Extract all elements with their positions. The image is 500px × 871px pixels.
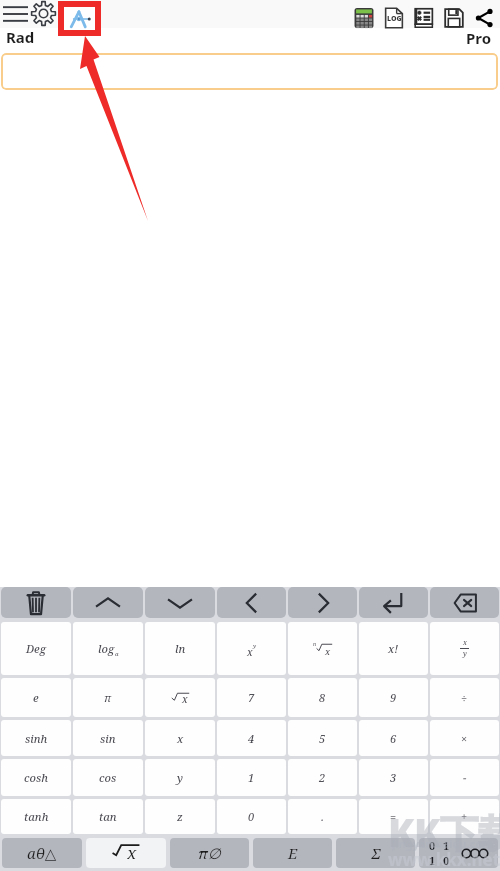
staticText: www.kkx.net (388, 848, 500, 871)
staticText: n (313, 641, 317, 648)
button[interactable]: Backspace (430, 587, 499, 618)
staticText: aθ△ (27, 843, 57, 863)
staticText: x (182, 692, 188, 706)
staticText: 0 (429, 838, 436, 853)
staticText: x (247, 645, 253, 659)
button[interactable]: Pro (466, 28, 492, 48)
button[interactable]: Settings (29, 0, 57, 27)
button[interactable]: x^y (217, 622, 286, 675)
button[interactable]: Calculator (349, 3, 379, 33)
staticText: 1 (248, 770, 255, 785)
button[interactable]: Matrix (419, 838, 498, 868)
button[interactable]: Down (145, 587, 215, 618)
button[interactable]: Left (217, 587, 286, 618)
button[interactable] (1, 53, 498, 90)
staticText: 1 (443, 838, 450, 853)
staticText: y (177, 770, 183, 785)
staticText: 0 (443, 853, 450, 868)
button[interactable]: 3 (359, 759, 428, 796)
button[interactable]: 1 (217, 759, 286, 796)
staticText: y (463, 649, 467, 659)
button[interactable]: tan (73, 799, 143, 834)
button[interactable]: + (430, 799, 499, 834)
button[interactable]: sinh (1, 720, 71, 756)
staticText: ÷ (461, 690, 468, 705)
button[interactable]: 9 (359, 678, 428, 717)
staticText: 6 (390, 731, 397, 746)
button[interactable]: 0 (217, 799, 286, 834)
staticText: cos (99, 770, 117, 785)
button[interactable]: y (145, 759, 215, 796)
button[interactable]: Share (469, 3, 499, 33)
button[interactable]: sin (73, 720, 143, 756)
button[interactable]: . (288, 799, 357, 834)
staticText: 9 (390, 690, 397, 705)
button[interactable]: Constants (170, 838, 249, 868)
staticText: x! (388, 641, 399, 656)
button[interactable]: ÷ (430, 678, 499, 717)
button[interactable]: Up (73, 587, 143, 618)
button[interactable]: cos (73, 759, 143, 796)
button[interactable]: Geometry (58, 1, 101, 36)
button[interactable]: 8 (288, 678, 357, 717)
staticText: sinh (25, 731, 48, 746)
button[interactable]: Rad (6, 27, 35, 47)
button[interactable]: Menu (0, 0, 30, 27)
button[interactable]: 7 (217, 678, 286, 717)
staticText: 2 (319, 770, 326, 785)
button[interactable]: − (430, 759, 499, 796)
staticText: 5 (319, 731, 326, 746)
button[interactable]: frac (430, 622, 499, 675)
staticText: y (253, 642, 257, 650)
button[interactable]: e (1, 678, 71, 717)
staticText: 8 (319, 690, 326, 705)
button[interactable]: Clear (1, 587, 71, 618)
staticText: . (321, 809, 324, 824)
button[interactable]: Deg (1, 622, 71, 675)
staticText: tanh (24, 809, 49, 824)
button[interactable]: 4 (217, 720, 286, 756)
button[interactable]: Right (288, 587, 357, 618)
button[interactable]: x (145, 720, 215, 756)
staticText: e (33, 690, 39, 705)
staticText: x (177, 731, 184, 746)
staticText: 1 (429, 853, 436, 868)
staticText: Deg (26, 641, 46, 656)
staticText: 0 (248, 809, 255, 824)
button[interactable]: 2 (288, 759, 357, 796)
button[interactable]: Log (379, 3, 409, 33)
button[interactable]: z (145, 799, 215, 834)
staticText: 3 (390, 770, 397, 785)
staticText: E (288, 843, 298, 863)
staticText: − (463, 770, 467, 785)
button[interactable]: Sum (336, 838, 415, 868)
button[interactable]: Formulas (409, 3, 439, 33)
staticText: sin (100, 731, 116, 746)
button[interactable]: x! (359, 622, 428, 675)
button[interactable]: Variables (2, 838, 82, 868)
button[interactable]: × (430, 720, 499, 756)
button[interactable]: cosh (1, 759, 71, 796)
button[interactable]: = (359, 799, 428, 834)
button[interactable]: 5 (288, 720, 357, 756)
button[interactable]: root (288, 622, 357, 675)
button[interactable]: Exponent (253, 838, 332, 868)
staticText: KK下载 (388, 806, 500, 858)
staticText: jingyan.baidu.com (392, 836, 494, 851)
staticText: LOG (387, 14, 402, 24)
button[interactable]: ln (145, 622, 215, 675)
staticText: = (390, 809, 397, 824)
button[interactable]: tanh (1, 799, 71, 834)
staticText: π∅ (198, 843, 221, 863)
button[interactable]: Enter (359, 587, 428, 618)
staticText: + (461, 809, 468, 824)
button[interactable]: Roots (86, 838, 166, 868)
button[interactable]: Save (439, 3, 469, 33)
staticText: 7 (248, 690, 255, 705)
button[interactable]: log (73, 622, 143, 675)
button[interactable]: 6 (359, 720, 428, 756)
staticText: x (325, 645, 331, 657)
button[interactable]: π (73, 678, 143, 717)
button[interactable]: sqrt (145, 678, 215, 717)
staticText: z (177, 809, 183, 824)
